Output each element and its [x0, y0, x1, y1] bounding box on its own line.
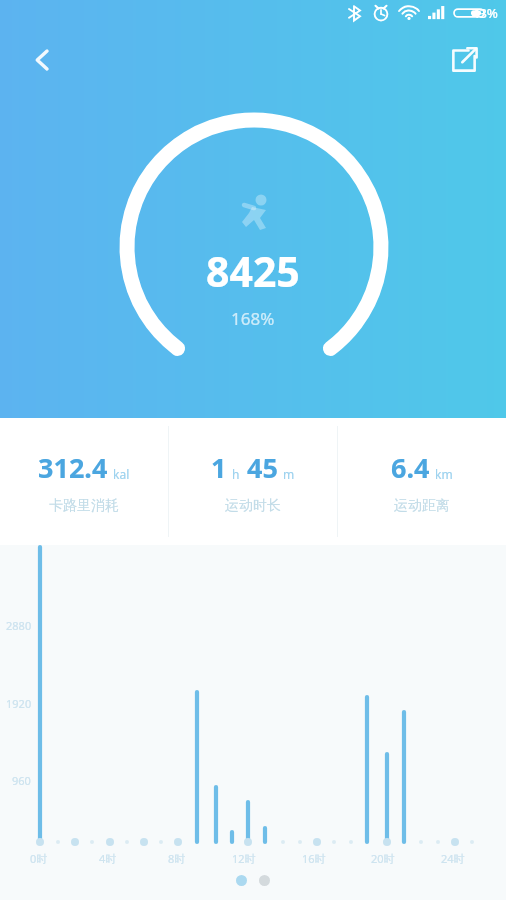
staticText: 16时: [302, 851, 326, 866]
staticText: m: [283, 466, 295, 482]
staticText: 1: [211, 449, 227, 486]
button[interactable]: Back: [16, 34, 68, 86]
staticText: 312.4: [38, 449, 108, 486]
staticText: 4时: [99, 851, 117, 866]
staticText: 6.4: [391, 449, 430, 486]
button[interactable]: 1: [169, 418, 337, 545]
staticText: km: [435, 466, 453, 482]
staticText: 运动时长: [225, 497, 281, 515]
staticText: 2880: [6, 618, 32, 633]
staticText: 1920: [6, 696, 32, 711]
staticText: 卡路里消耗: [49, 497, 119, 515]
staticText: 8时: [168, 851, 186, 866]
staticText: 20时: [371, 851, 395, 866]
staticText: 168%: [231, 307, 275, 330]
button[interactable]: 6.4: [338, 418, 506, 545]
staticText: kal: [113, 466, 130, 482]
staticText: h: [232, 466, 240, 482]
staticText: 43%: [472, 4, 498, 22]
staticText: 12时: [232, 851, 256, 866]
staticText: 8425: [206, 243, 300, 299]
button[interactable]: Share: [438, 34, 490, 86]
button[interactable]: 312.4: [0, 418, 168, 545]
staticText: 运动距离: [394, 497, 450, 515]
staticText: 960: [12, 773, 31, 788]
staticText: 0时: [30, 851, 48, 866]
staticText: 45: [247, 449, 278, 486]
button[interactable]: Page 1: [236, 875, 247, 886]
button[interactable]: Page 2: [259, 875, 270, 886]
staticText: 24时: [441, 851, 465, 866]
